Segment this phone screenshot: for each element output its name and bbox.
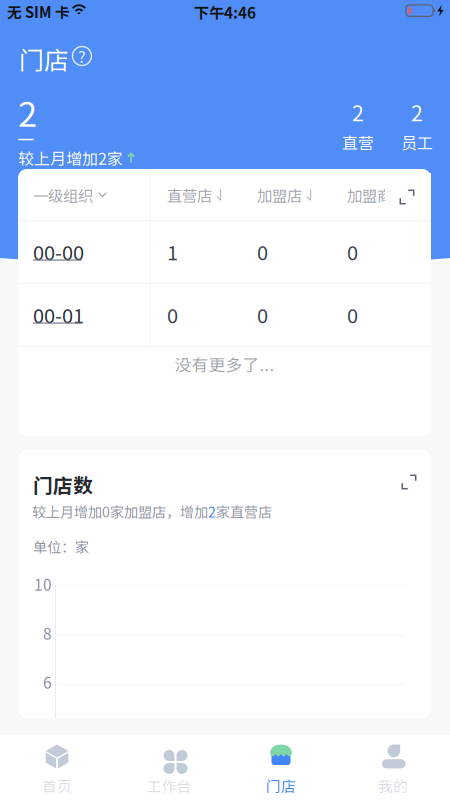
staticText: 直营 [342, 130, 374, 154]
staticText: 加盟店 [257, 184, 302, 206]
staticText: 员工 [401, 130, 433, 154]
staticText: 2 [18, 86, 37, 137]
button[interactable]: 00-01 [18, 283, 431, 346]
staticText: 8 [43, 622, 52, 644]
staticText: 家直营店 [216, 501, 272, 521]
staticText: 2 [411, 96, 423, 127]
button[interactable]: Expand table [399, 189, 415, 205]
staticText: 门店 [19, 41, 69, 77]
staticText: 6 [43, 671, 52, 693]
staticText: 0 [347, 300, 358, 329]
staticText: 00-01 [33, 300, 84, 329]
staticText: 2 [208, 501, 216, 521]
staticText: 工作台 [146, 775, 191, 796]
staticText: 单位：家 [33, 536, 89, 556]
staticText: 较上月增加0家加盟店，增加 [32, 501, 208, 521]
staticText: 2 [352, 96, 364, 127]
staticText: 00-00 [33, 237, 84, 266]
staticText: 0 [257, 300, 268, 329]
staticText: 下午4:46 [194, 1, 256, 23]
staticText: 门店 [266, 775, 296, 796]
staticText: 10 [34, 573, 52, 595]
staticText: 0 [347, 237, 358, 266]
button[interactable]: 首页 [1, 735, 113, 800]
staticText: 1 [167, 237, 178, 266]
button[interactable]: Help [69, 43, 95, 69]
button[interactable]: Expand chart [401, 474, 417, 490]
staticText: 无 SIM 卡 [7, 1, 70, 22]
button[interactable]: 00-00 [18, 220, 431, 283]
staticText: 一级组织 [33, 184, 93, 206]
staticText: 首页 [42, 775, 72, 796]
staticText: 较上月增加2家 [18, 146, 123, 169]
staticText: 门店数 [33, 470, 93, 499]
staticText: 0 [257, 237, 268, 266]
button[interactable]: 门店 [225, 735, 337, 800]
staticText: ? [78, 44, 86, 68]
staticText: 加盟商 [347, 184, 392, 206]
button[interactable]: 工作台 [113, 735, 225, 800]
staticText: 没有更多了... [174, 352, 274, 376]
button[interactable]: 我的 [337, 735, 449, 800]
staticText: 0 [167, 300, 178, 329]
staticText: 直营店 [167, 184, 212, 206]
staticText: 我的 [378, 775, 408, 796]
